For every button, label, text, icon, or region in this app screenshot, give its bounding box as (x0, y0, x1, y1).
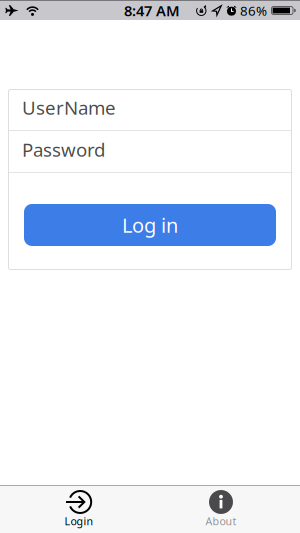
staticText: Password (22, 137, 105, 162)
staticText: Login (64, 514, 93, 528)
staticText: 8:47 AM (124, 1, 180, 20)
staticText: 86% (240, 2, 267, 19)
button[interactable]: UserName (8, 89, 292, 130)
staticText: Log in (122, 212, 178, 238)
button[interactable]: Log in (24, 204, 276, 246)
button[interactable]: Password (8, 131, 292, 172)
staticText: UserName (22, 95, 116, 120)
button[interactable]: About (150, 486, 292, 533)
staticText: About (205, 514, 236, 528)
button[interactable]: Login (8, 486, 150, 533)
